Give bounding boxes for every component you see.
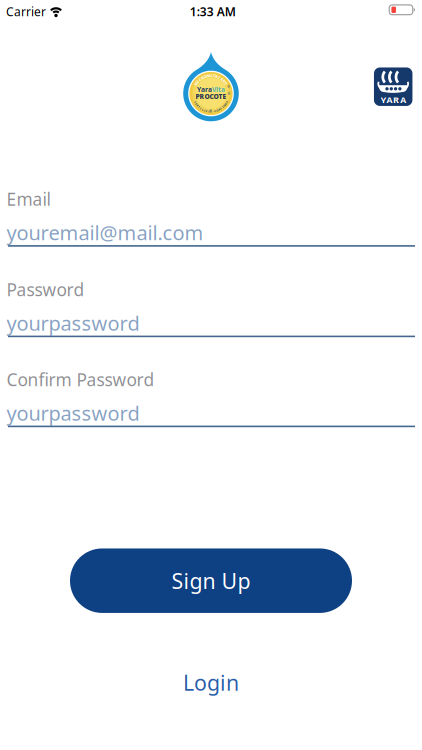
staticText: L — [202, 108, 203, 111]
staticText: ® — [227, 85, 229, 89]
staticText: F — [195, 100, 196, 104]
staticText: E — [208, 110, 209, 113]
staticText: Vita — [212, 85, 225, 94]
staticText: M — [194, 81, 198, 86]
staticText: I — [197, 78, 199, 84]
button[interactable]: yourpassword — [0, 0, 422, 750]
staticText: I — [200, 107, 201, 110]
staticText: R — [215, 74, 218, 79]
staticText: yourpassword — [6, 400, 139, 426]
staticText: T — [225, 81, 227, 86]
staticText: yourpassword — [6, 310, 139, 336]
staticText: R — [201, 75, 204, 80]
staticText: Login — [183, 668, 239, 697]
staticText: N — [223, 78, 226, 84]
staticText: E — [221, 76, 223, 82]
staticText: Yara — [197, 85, 212, 94]
staticText: T — [213, 73, 215, 78]
staticText: I — [204, 109, 205, 112]
button[interactable]: yourpassword — [0, 0, 422, 750]
staticText: YARA — [380, 94, 406, 106]
button[interactable]: youremail@mail.com — [0, 0, 422, 750]
staticText: I — [222, 105, 223, 109]
staticText: I — [218, 75, 220, 80]
staticText: C — [214, 109, 216, 113]
staticText: PROCOTE — [195, 92, 226, 101]
staticText: - — [213, 110, 214, 113]
staticText: 1:33 AM — [190, 3, 236, 19]
button[interactable]: Sign Up — [70, 548, 352, 613]
staticText: N — [223, 104, 225, 107]
button[interactable]: Login — [183, 668, 239, 697]
staticText: youremail@mail.com — [6, 219, 203, 246]
staticText: T — [220, 107, 222, 110]
staticText: T — [198, 105, 200, 109]
staticText: Sign Up — [171, 566, 250, 595]
staticText: S — [226, 100, 227, 104]
staticText: R — [197, 104, 199, 107]
staticText: Z — [206, 109, 208, 113]
staticText: N — [207, 73, 210, 78]
staticText: A — [218, 108, 220, 111]
staticText: Email — [6, 187, 50, 210]
staticText: Carrier — [6, 3, 46, 19]
staticText: E — [196, 102, 197, 105]
staticText: R — [210, 110, 212, 113]
staticText: C — [199, 76, 202, 82]
staticText: U — [209, 73, 212, 78]
staticText: ® — [228, 92, 230, 96]
staticText: G — [225, 102, 227, 105]
staticText: Confirm Password — [6, 368, 154, 391]
staticText: O — [204, 74, 207, 79]
staticText: O — [216, 109, 218, 112]
staticText: Password — [6, 278, 84, 301]
